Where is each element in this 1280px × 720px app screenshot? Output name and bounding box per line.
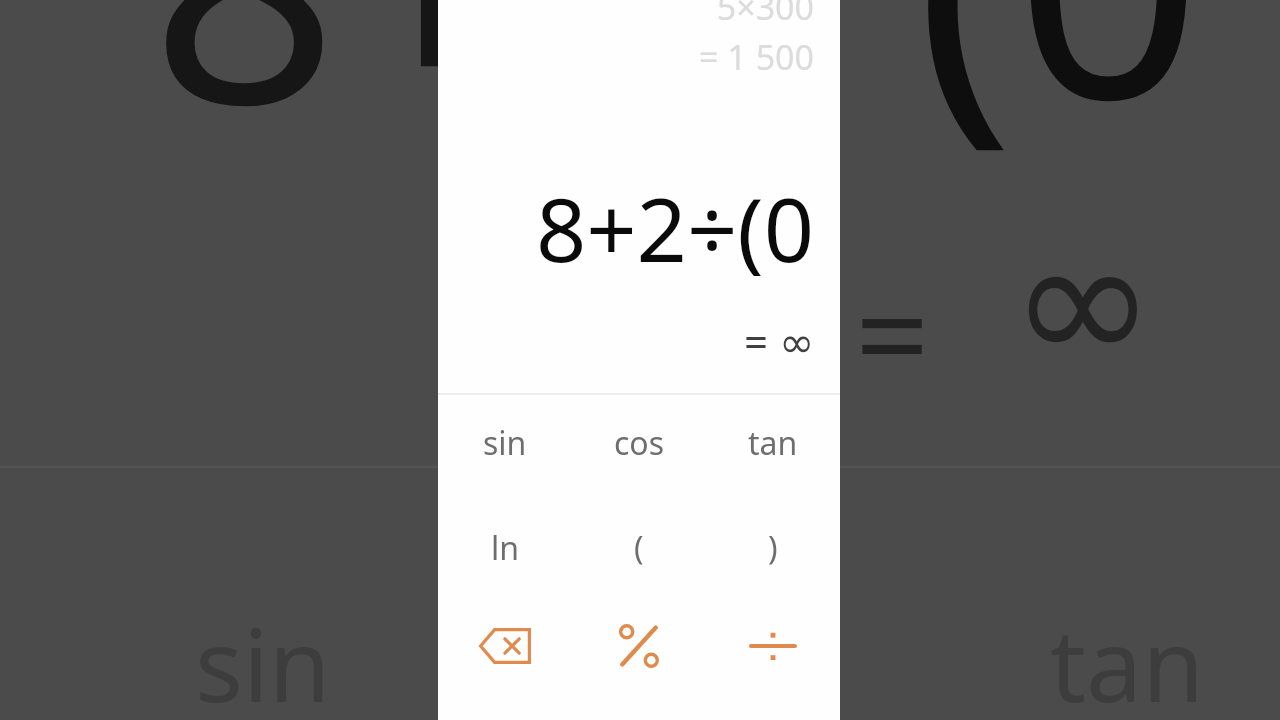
staticText: =	[855, 243, 930, 420]
button[interactable]: ln	[438, 509, 572, 587]
staticText: cos	[614, 421, 665, 465]
staticText: tan	[748, 421, 798, 465]
staticText: = 1 500	[699, 34, 814, 80]
staticText: 8+2÷(0	[535, 168, 814, 288]
staticText: 5×300	[716, 0, 814, 30]
staticText: ∞	[1010, 200, 1156, 404]
button[interactable]: sin	[438, 395, 572, 491]
button[interactable]: cos	[572, 395, 706, 491]
button[interactable]: tan	[706, 395, 840, 491]
staticText: ln	[491, 526, 520, 570]
button[interactable]: )	[706, 509, 840, 587]
staticText: sin	[195, 595, 331, 720]
button[interactable]: Backspace	[438, 587, 572, 705]
button[interactable]: Divide	[706, 587, 840, 705]
staticText: (0	[915, 0, 1203, 194]
staticText: sin	[483, 421, 527, 465]
staticText: 8+	[150, 0, 528, 199]
button[interactable]: Percent	[572, 587, 706, 705]
staticText: (	[634, 526, 644, 570]
button[interactable]: (	[572, 509, 706, 587]
staticText: tan	[1050, 595, 1204, 720]
staticText: )	[768, 526, 778, 570]
staticText: = ∞	[744, 312, 814, 369]
